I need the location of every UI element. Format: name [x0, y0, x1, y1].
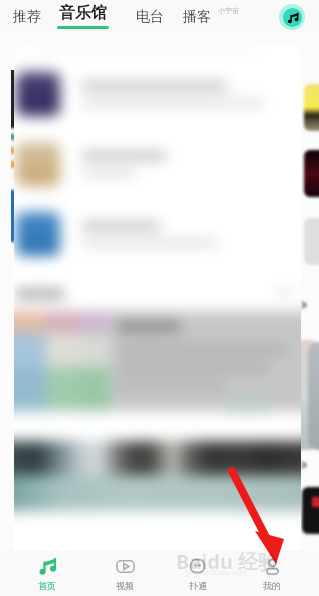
- button[interactable]: 电台: [131, 0, 169, 34]
- button[interactable]: 推荐: [8, 0, 46, 34]
- staticText: 扑通: [189, 580, 207, 591]
- button[interactable]: 我的: [235, 550, 309, 596]
- staticText: 首页: [38, 580, 56, 591]
- button[interactable]: 视频: [88, 550, 162, 596]
- staticText: Baidu 经验: [176, 548, 279, 575]
- staticText: 电台: [136, 8, 164, 26]
- staticText: 我的: [263, 580, 281, 591]
- staticText: 推荐: [13, 8, 41, 26]
- staticText: 视频: [116, 580, 134, 591]
- button[interactable]: 首页: [10, 550, 84, 596]
- button[interactable]: 正在播放: [279, 4, 305, 30]
- button[interactable]: 播客: [178, 0, 216, 34]
- staticText: 播客: [183, 8, 211, 26]
- staticText: 小宇宙: [218, 6, 239, 15]
- button[interactable]: 音乐馆: [55, 0, 111, 34]
- staticText: 音乐馆: [59, 3, 107, 23]
- staticText: jingyan.baidu.com: [186, 568, 247, 578]
- button[interactable]: 扑通: [161, 550, 235, 596]
